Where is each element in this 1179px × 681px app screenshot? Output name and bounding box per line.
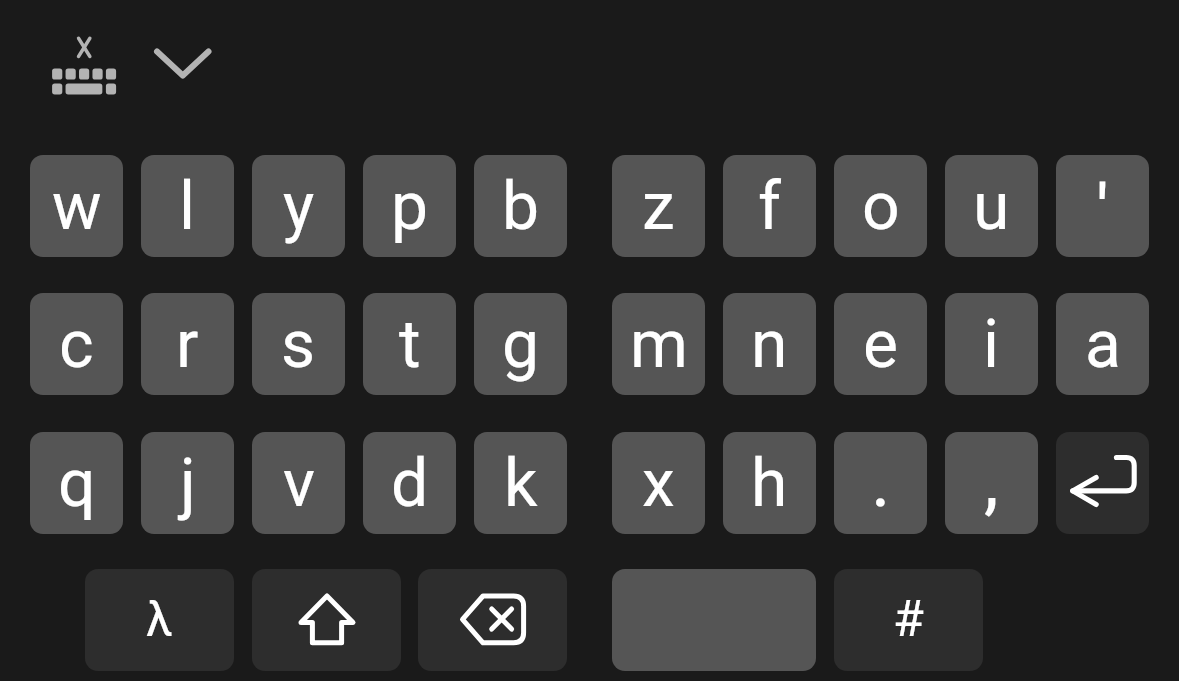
button[interactable]: n <box>723 293 816 395</box>
button[interactable]: k <box>474 432 567 534</box>
staticText: g <box>502 306 540 383</box>
staticText: c <box>59 306 94 383</box>
button[interactable]: λ <box>85 569 234 671</box>
button[interactable]: Shift <box>252 569 401 671</box>
staticText: u <box>973 168 1010 245</box>
button[interactable]: u <box>945 155 1038 257</box>
staticText: p <box>391 168 429 245</box>
staticText: o <box>862 168 900 245</box>
button[interactable]: h <box>723 432 816 534</box>
button[interactable]: x <box>612 432 705 534</box>
button[interactable]: a <box>1056 293 1149 395</box>
button[interactable]: r <box>141 293 234 395</box>
staticText: r <box>176 306 199 383</box>
button[interactable]: j <box>141 432 234 534</box>
staticText: b <box>502 168 540 245</box>
button[interactable]: p <box>363 155 456 257</box>
staticText: m <box>630 306 688 383</box>
staticText: h <box>751 445 788 522</box>
staticText: a <box>1085 306 1121 383</box>
staticText: i <box>983 306 1000 383</box>
staticText: t <box>399 306 421 383</box>
button[interactable]: s <box>252 293 345 395</box>
staticText: v <box>283 445 315 522</box>
staticText: n <box>751 306 788 383</box>
staticText: λ <box>146 591 173 647</box>
button[interactable]: Enter <box>1056 432 1149 534</box>
button[interactable]: . <box>834 432 927 534</box>
button[interactable]: Space <box>612 569 816 671</box>
button[interactable]: Backspace <box>418 569 567 671</box>
button[interactable]: b <box>474 155 567 257</box>
staticText: s <box>281 306 316 383</box>
staticText: j <box>180 445 196 522</box>
button[interactable]: , <box>945 432 1038 534</box>
staticText: e <box>863 306 898 383</box>
button[interactable]: i <box>945 293 1038 395</box>
button[interactable]: g <box>474 293 567 395</box>
staticText: y <box>283 168 315 245</box>
button[interactable]: l <box>141 155 234 257</box>
staticText: k <box>504 445 538 522</box>
button[interactable]: c <box>30 293 123 395</box>
button[interactable]: v <box>252 432 345 534</box>
staticText: . <box>871 437 891 524</box>
staticText: w <box>52 168 102 245</box>
staticText: # <box>893 590 924 649</box>
staticText: , <box>984 437 999 524</box>
button[interactable]: Hide keyboard <box>142 28 226 100</box>
button[interactable]: y <box>252 155 345 257</box>
button[interactable]: e <box>834 293 927 395</box>
staticText: ' <box>1096 168 1109 255</box>
button[interactable]: w <box>30 155 123 257</box>
staticText: x <box>642 445 675 522</box>
button[interactable]: z <box>612 155 705 257</box>
button[interactable]: o <box>834 155 927 257</box>
staticText: q <box>58 445 96 522</box>
button[interactable]: # <box>834 569 983 671</box>
button[interactable]: f <box>723 155 816 257</box>
staticText: l <box>179 168 196 245</box>
staticText: z <box>642 168 675 245</box>
button[interactable]: Switch input language <box>40 26 124 104</box>
button[interactable]: t <box>363 293 456 395</box>
button[interactable]: q <box>30 432 123 534</box>
staticText: f <box>758 168 781 245</box>
staticText: d <box>391 445 429 522</box>
button[interactable]: d <box>363 432 456 534</box>
button[interactable]: m <box>612 293 705 395</box>
button[interactable]: ' <box>1056 155 1149 257</box>
